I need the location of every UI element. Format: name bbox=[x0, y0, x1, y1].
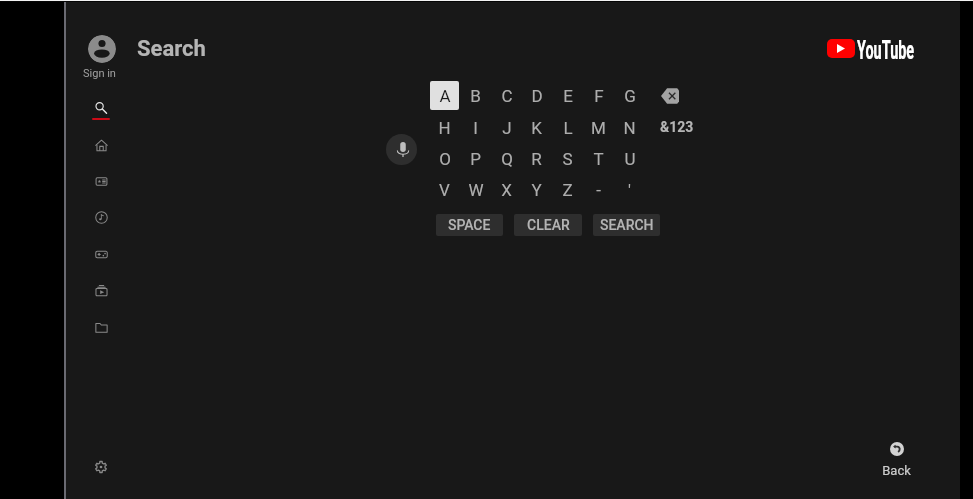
button[interactable]: Gaming bbox=[86, 239, 116, 269]
button[interactable]: Backspace bbox=[655, 84, 685, 108]
button[interactable]: Z bbox=[553, 175, 582, 204]
staticText: SPACE bbox=[448, 217, 491, 233]
button[interactable]: Sign in bbox=[88, 35, 116, 63]
staticText: J bbox=[502, 118, 512, 138]
button[interactable]: N bbox=[615, 113, 644, 142]
staticText: CLEAR bbox=[527, 217, 570, 233]
button[interactable]: U bbox=[615, 144, 644, 173]
staticText: Back bbox=[882, 463, 911, 478]
staticText: P bbox=[470, 149, 481, 169]
button[interactable]: Folder bbox=[86, 312, 116, 342]
button[interactable]: K bbox=[522, 113, 551, 142]
button[interactable]: Q bbox=[492, 144, 521, 173]
button[interactable]: Subscriptions bbox=[86, 166, 116, 196]
button[interactable]: T bbox=[584, 144, 613, 173]
staticText: F bbox=[594, 86, 604, 106]
staticText: ' bbox=[628, 180, 631, 200]
button[interactable]: Music bbox=[86, 202, 116, 232]
button[interactable]: B bbox=[461, 81, 490, 110]
button[interactable]: &123 bbox=[656, 113, 698, 140]
button[interactable]: V bbox=[430, 175, 459, 204]
staticText: O bbox=[439, 149, 451, 169]
button[interactable]: SEARCH bbox=[593, 214, 660, 236]
staticText: YouTube bbox=[857, 36, 915, 64]
staticText: Y bbox=[531, 180, 542, 200]
staticText: - bbox=[596, 180, 601, 200]
button[interactable]: Voice search bbox=[386, 134, 417, 165]
staticText: X bbox=[501, 180, 512, 200]
button[interactable]: M bbox=[584, 113, 613, 142]
button[interactable]: SPACE bbox=[436, 214, 503, 236]
staticText: S bbox=[562, 149, 573, 169]
staticText: M bbox=[591, 118, 606, 138]
staticText: B bbox=[470, 86, 481, 106]
button[interactable]: Home bbox=[86, 130, 116, 160]
staticText: A bbox=[439, 86, 451, 106]
staticText: U bbox=[624, 149, 636, 169]
button[interactable]: S bbox=[553, 144, 582, 173]
staticText: Q bbox=[501, 149, 513, 169]
button[interactable]: Search bbox=[86, 93, 116, 123]
button[interactable]: A bbox=[430, 81, 459, 110]
button[interactable]: I bbox=[461, 113, 490, 142]
staticText: C bbox=[501, 86, 513, 106]
staticText: Sign in bbox=[83, 67, 116, 80]
staticText: SEARCH bbox=[600, 217, 654, 233]
button[interactable]: J bbox=[492, 113, 521, 142]
button[interactable]: L bbox=[553, 113, 582, 142]
staticText: W bbox=[468, 180, 484, 200]
button[interactable]: R bbox=[522, 144, 551, 173]
button[interactable]: Back bbox=[872, 442, 921, 478]
button[interactable]: E bbox=[553, 81, 582, 110]
staticText: Search bbox=[137, 36, 206, 62]
staticText: I bbox=[473, 118, 478, 138]
staticText: N bbox=[623, 118, 636, 138]
button[interactable]: W bbox=[461, 175, 490, 204]
staticText: L bbox=[563, 118, 573, 138]
staticText: V bbox=[439, 180, 450, 200]
staticText: &123 bbox=[660, 119, 694, 135]
button[interactable]: X bbox=[492, 175, 521, 204]
button[interactable]: YouTube bbox=[822, 34, 918, 64]
button[interactable]: D bbox=[522, 81, 551, 110]
button[interactable]: Library bbox=[86, 275, 116, 305]
button[interactable]: C bbox=[492, 81, 521, 110]
button[interactable]: G bbox=[615, 81, 644, 110]
staticText: T bbox=[593, 149, 604, 169]
button[interactable]: P bbox=[461, 144, 490, 173]
button[interactable]: F bbox=[584, 81, 613, 110]
button[interactable]: H bbox=[430, 113, 459, 142]
staticText: G bbox=[624, 86, 636, 106]
staticText: E bbox=[563, 86, 573, 106]
staticText: K bbox=[531, 118, 542, 138]
button[interactable]: - bbox=[584, 175, 613, 204]
staticText: R bbox=[531, 149, 542, 169]
button[interactable]: O bbox=[430, 144, 459, 173]
staticText: D bbox=[531, 86, 543, 106]
button[interactable]: CLEAR bbox=[514, 214, 582, 236]
staticText: Z bbox=[562, 180, 573, 200]
button[interactable]: Settings bbox=[86, 452, 116, 482]
staticText: H bbox=[438, 118, 451, 138]
button[interactable]: Y bbox=[522, 175, 551, 204]
button[interactable]: ' bbox=[615, 175, 644, 204]
